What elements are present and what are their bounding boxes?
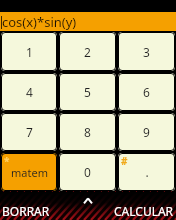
staticText: 0 — [84, 164, 91, 180]
staticText: 4 — [26, 84, 33, 100]
button[interactable]: 1 — [1, 32, 57, 71]
staticText: 2 — [84, 44, 91, 60]
button[interactable]: 6 — [118, 73, 175, 111]
staticText: 8 — [84, 124, 91, 140]
button[interactable]: 7 — [1, 113, 57, 151]
staticText: BORRAR — [2, 203, 50, 219]
staticText: 6 — [143, 84, 150, 100]
staticText: 9 — [143, 124, 150, 140]
staticText: 7 — [26, 124, 33, 140]
button[interactable]: 4 — [1, 73, 57, 111]
staticText: cos(x)*sin(y) — [2, 13, 77, 31]
button[interactable]: BORRAR — [2, 203, 78, 220]
staticText: * — [4, 154, 10, 168]
button[interactable]: cos(x)*sin(y) — [0, 12, 176, 31]
button[interactable]: 2 — [59, 32, 116, 71]
button[interactable]: More options — [78, 206, 98, 220]
button[interactable]: 0 — [59, 153, 116, 191]
staticText: 3 — [143, 44, 150, 60]
button[interactable]: 8 — [59, 113, 116, 151]
staticText: CALCULAR — [114, 203, 174, 219]
button[interactable]: # — [118, 153, 175, 191]
button[interactable]: CALCULAR — [98, 203, 174, 220]
staticText: . — [145, 164, 149, 180]
staticText: 5 — [84, 84, 91, 100]
staticText: matem — [11, 165, 48, 180]
staticText: 1 — [26, 44, 33, 60]
button[interactable]: 3 — [118, 32, 175, 71]
button[interactable]: 5 — [59, 73, 116, 111]
button[interactable]: 9 — [118, 113, 175, 151]
button[interactable]: * — [1, 153, 57, 191]
staticText: # — [121, 154, 128, 168]
